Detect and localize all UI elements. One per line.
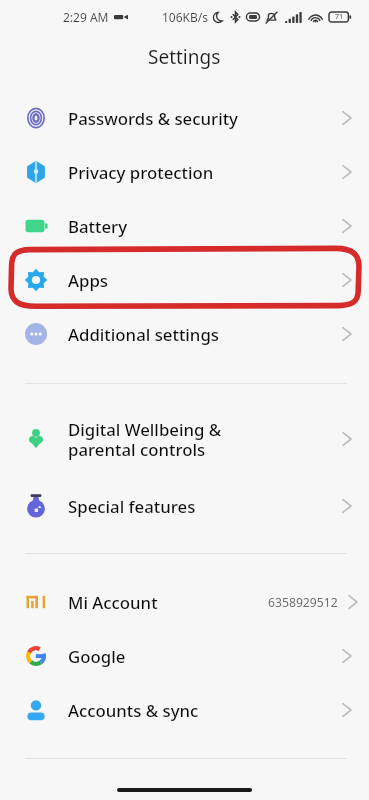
staticText: Passwords & security [68,107,238,130]
staticText: 71 [335,12,344,22]
button[interactable]: Google [0,629,369,683]
button[interactable]: Apps [0,253,369,307]
button[interactable]: Passwords & security [0,91,369,145]
staticText: 2:29 AM [63,9,109,25]
staticText: Special features [68,495,196,518]
staticText: Digital Wellbeing & parental controls [68,418,292,461]
staticText: Additional settings [68,323,219,346]
staticText: Apps [68,269,108,292]
staticText: Battery [68,215,128,238]
staticText: Google [68,645,126,668]
staticText: 106KB/s [162,9,209,25]
staticText: Mi Account [68,591,158,614]
button[interactable]: Mi Account [0,575,369,629]
button[interactable]: Battery [0,199,369,253]
button[interactable]: Additional settings [0,307,369,361]
staticText: Settings [148,44,221,70]
staticText: Privacy protection [68,161,214,184]
staticText: Accounts & sync [68,699,199,722]
staticText: 6358929512 [268,594,338,611]
button[interactable]: Digital Wellbeing & parental controls [0,399,369,479]
button[interactable]: Accounts & sync [0,683,369,737]
button[interactable]: Privacy protection [0,145,369,199]
button[interactable]: Special features [0,479,369,533]
